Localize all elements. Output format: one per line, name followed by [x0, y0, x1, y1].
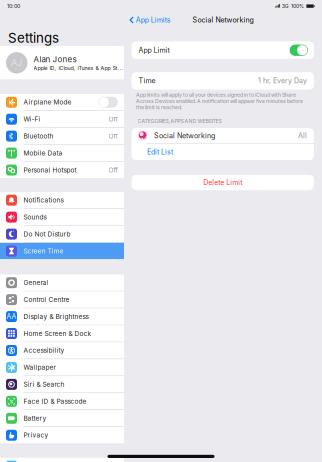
button[interactable]: Delete Limit — [131, 175, 314, 190]
button[interactable]: App Limits — [124, 12, 175, 28]
button[interactable]: AA — [0, 308, 124, 325]
button[interactable]: Control Centre — [0, 291, 124, 308]
staticText: Personal Hotspot — [24, 166, 77, 174]
button[interactable]: Mobile Data — [0, 145, 124, 161]
staticText: Screen Time — [24, 247, 64, 255]
button[interactable]: Sounds — [0, 209, 124, 225]
staticText: Settings — [8, 30, 59, 46]
staticText: App Limits — [136, 16, 171, 24]
button[interactable]: Wallpaper — [0, 359, 124, 376]
staticText: Social Networking — [192, 16, 253, 24]
staticText: Airplane Mode — [24, 98, 72, 106]
staticText: Sounds — [24, 213, 47, 221]
button[interactable]: Edit List — [131, 144, 177, 160]
button[interactable]: iTunes & App Store — [0, 458, 124, 462]
button[interactable]: AJ — [0, 46, 124, 80]
staticText: CATEGORIES, APPS AND WEBSITES — [137, 118, 221, 124]
staticText: All — [298, 131, 307, 140]
staticText: Off — [109, 132, 118, 140]
staticText: Edit List — [147, 148, 173, 156]
staticText: Siri & Search — [24, 380, 65, 388]
staticText: Apple ID, iCloud, iTunes & App St... — [34, 65, 124, 71]
staticText: 10:00 — [7, 3, 20, 9]
staticText: 100% — [291, 3, 304, 9]
button[interactable]: Do Not Disturb — [0, 226, 124, 242]
staticText: Off — [109, 166, 118, 174]
button[interactable]: Siri & Search — [0, 376, 124, 392]
button[interactable]: Bluetooth — [0, 128, 124, 144]
staticText: Bluetooth — [24, 132, 54, 140]
staticText: Face ID & Passcode — [24, 397, 87, 405]
staticText: App Limit — [138, 46, 169, 54]
staticText: App limits will apply to all your device… — [136, 92, 303, 111]
staticText: Notifications — [24, 196, 64, 204]
staticText: Privacy — [24, 431, 49, 439]
staticText: 3G — [282, 3, 289, 9]
button[interactable]: Battery — [0, 410, 124, 426]
button[interactable]: Privacy — [0, 427, 124, 443]
button[interactable]: Notifications — [0, 192, 124, 208]
staticText: 1 hr, Every Day — [258, 76, 307, 85]
staticText: Accessibility — [24, 346, 65, 354]
staticText: Time — [138, 76, 155, 85]
staticText: AJ — [11, 58, 22, 68]
staticText: Control Centre — [24, 296, 70, 304]
button[interactable]: Screen Time — [0, 243, 124, 259]
button[interactable]: Wi-Fi — [0, 111, 124, 127]
staticText: General — [24, 279, 49, 287]
staticText: Social Networking — [154, 131, 215, 140]
staticText: Battery — [24, 414, 47, 422]
button[interactable]: Face ID & Passcode — [0, 393, 124, 409]
staticText: Off — [109, 115, 118, 123]
staticText: Delete Limit — [203, 178, 242, 187]
staticText: Display & Brightness — [24, 313, 89, 320]
staticText: Home Screen & Dock — [24, 330, 92, 337]
button[interactable]: Home Screen & Dock — [0, 325, 124, 342]
button[interactable]: Accessibility — [0, 342, 124, 359]
staticText: Mobile Data — [24, 149, 63, 157]
button[interactable]: Personal Hotspot — [0, 162, 124, 178]
staticText: Wallpaper — [24, 363, 56, 371]
staticText: AA — [6, 312, 16, 321]
button[interactable]: General — [0, 274, 124, 291]
button[interactable]: Airplane Mode — [0, 94, 124, 110]
staticText: Alan Jones — [34, 54, 77, 64]
staticText: Do Not Disturb — [24, 230, 71, 238]
staticText: Wi-Fi — [24, 115, 41, 123]
